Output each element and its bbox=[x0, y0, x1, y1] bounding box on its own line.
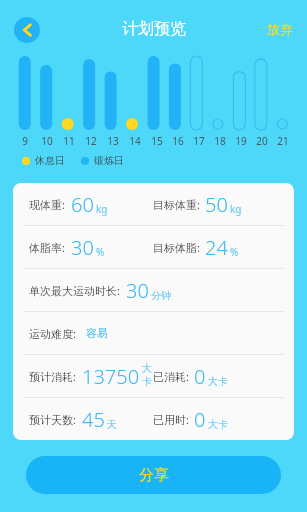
staticText: 13750 bbox=[82, 363, 140, 390]
staticText: 预计天数: bbox=[29, 412, 76, 427]
staticText: 大卡 bbox=[208, 418, 228, 431]
staticText: 13 bbox=[107, 134, 119, 148]
staticText: 天 bbox=[107, 418, 117, 431]
staticText: 大卡 bbox=[208, 375, 228, 388]
staticText: 9 bbox=[22, 134, 28, 148]
staticText: 锻炼日 bbox=[94, 154, 124, 167]
staticText: 45 bbox=[82, 406, 105, 433]
button[interactable]: 分享 bbox=[26, 456, 281, 494]
staticText: 目标体脂: bbox=[153, 240, 200, 255]
staticText: 休息日 bbox=[35, 154, 65, 167]
staticText: 16 bbox=[172, 134, 184, 148]
staticText: 11 bbox=[63, 134, 75, 148]
staticText: % bbox=[230, 245, 239, 259]
staticText: 大卡 bbox=[142, 362, 153, 388]
staticText: 50 bbox=[205, 191, 228, 218]
staticText: 运动难度: bbox=[29, 326, 76, 341]
staticText: 17 bbox=[193, 134, 205, 148]
staticText: kg bbox=[230, 202, 242, 216]
staticText: kg bbox=[96, 202, 108, 216]
staticText: 18 bbox=[214, 134, 226, 148]
staticText: 24 bbox=[205, 234, 228, 261]
staticText: 15 bbox=[151, 134, 163, 148]
staticText: 放弃 bbox=[267, 21, 293, 37]
staticText: 容易 bbox=[86, 326, 108, 340]
staticText: % bbox=[96, 245, 105, 259]
staticText: 目标体重: bbox=[153, 197, 200, 212]
staticText: 分享 bbox=[139, 466, 169, 485]
staticText: 已用时: bbox=[153, 412, 189, 427]
staticText: 0 bbox=[194, 363, 206, 390]
staticText: 60 bbox=[71, 191, 94, 218]
staticText: 已消耗: bbox=[153, 369, 189, 384]
staticText: 现体重: bbox=[29, 197, 65, 212]
staticText: 14 bbox=[129, 134, 141, 148]
staticText: 12 bbox=[85, 134, 97, 148]
staticText: 单次最大运动时长: bbox=[29, 283, 120, 298]
staticText: 30 bbox=[126, 277, 149, 304]
button[interactable]: Back bbox=[14, 17, 40, 43]
staticText: 计划预览 bbox=[122, 19, 186, 39]
staticText: 10 bbox=[41, 134, 53, 148]
button[interactable]: 放弃 bbox=[253, 15, 307, 43]
staticText: 30 bbox=[71, 234, 94, 261]
staticText: 体脂率: bbox=[29, 240, 65, 255]
staticText: 21 bbox=[277, 134, 289, 148]
staticText: 0 bbox=[194, 406, 206, 433]
staticText: 分钟 bbox=[151, 289, 171, 302]
staticText: 19 bbox=[235, 134, 247, 148]
staticText: 预计消耗: bbox=[29, 369, 76, 384]
staticText: 20 bbox=[256, 134, 268, 148]
